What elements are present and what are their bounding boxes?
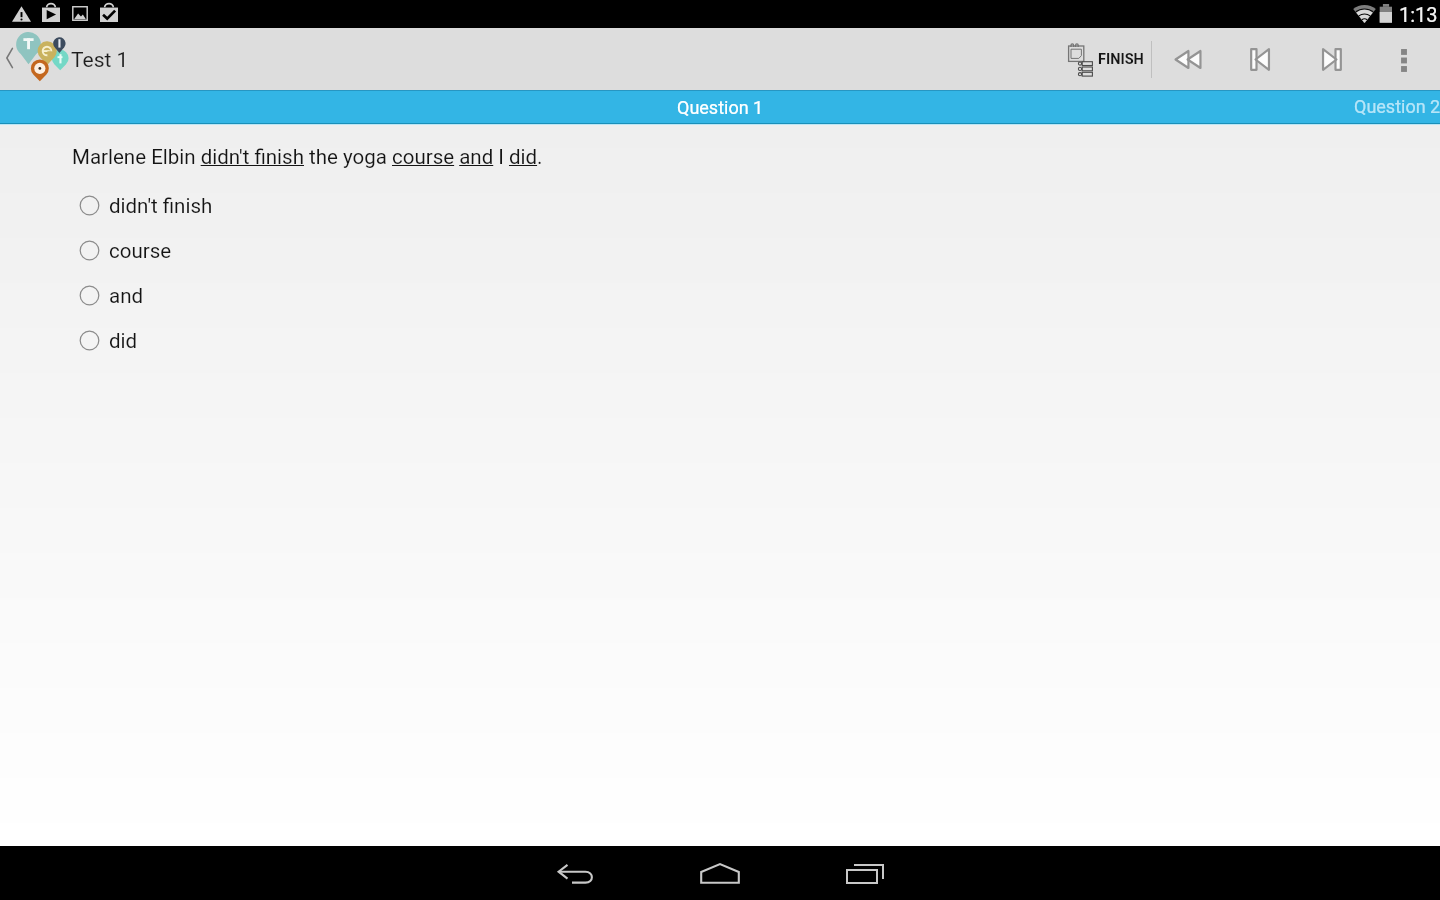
staticText: did <box>109 329 138 353</box>
staticText: course <box>109 239 172 263</box>
button[interactable]: Rewind <box>1157 28 1219 90</box>
button[interactable]: Question 1 <box>653 90 788 125</box>
button[interactable]: Previous question <box>1229 28 1291 90</box>
button[interactable]: More options <box>1373 28 1435 90</box>
staticText: Marlene Elbin didn't finish the yoga cou… <box>72 145 543 169</box>
button[interactable]: Back <box>534 846 618 900</box>
button[interactable]: Test 1 <box>71 48 129 73</box>
button[interactable]: did <box>0 318 1440 363</box>
button[interactable]: Next question <box>1301 28 1363 90</box>
staticText: and <box>109 284 144 308</box>
button[interactable]: Navigate up <box>0 28 72 90</box>
button[interactable]: FINISH <box>1060 28 1150 90</box>
button[interactable]: and <box>0 273 1440 318</box>
button[interactable]: Question 2 <box>1330 90 1417 123</box>
button[interactable]: Recent apps <box>822 846 908 900</box>
staticText: Question 1 <box>677 97 764 118</box>
staticText: didn't finish <box>109 194 213 218</box>
staticText: Question 2 <box>1354 96 1440 117</box>
button[interactable]: Home <box>676 846 764 900</box>
button[interactable]: didn't finish <box>0 183 1440 228</box>
staticText: FINISH <box>1098 51 1144 68</box>
button[interactable]: course <box>0 228 1440 273</box>
staticText: 1:13 <box>1399 3 1438 26</box>
